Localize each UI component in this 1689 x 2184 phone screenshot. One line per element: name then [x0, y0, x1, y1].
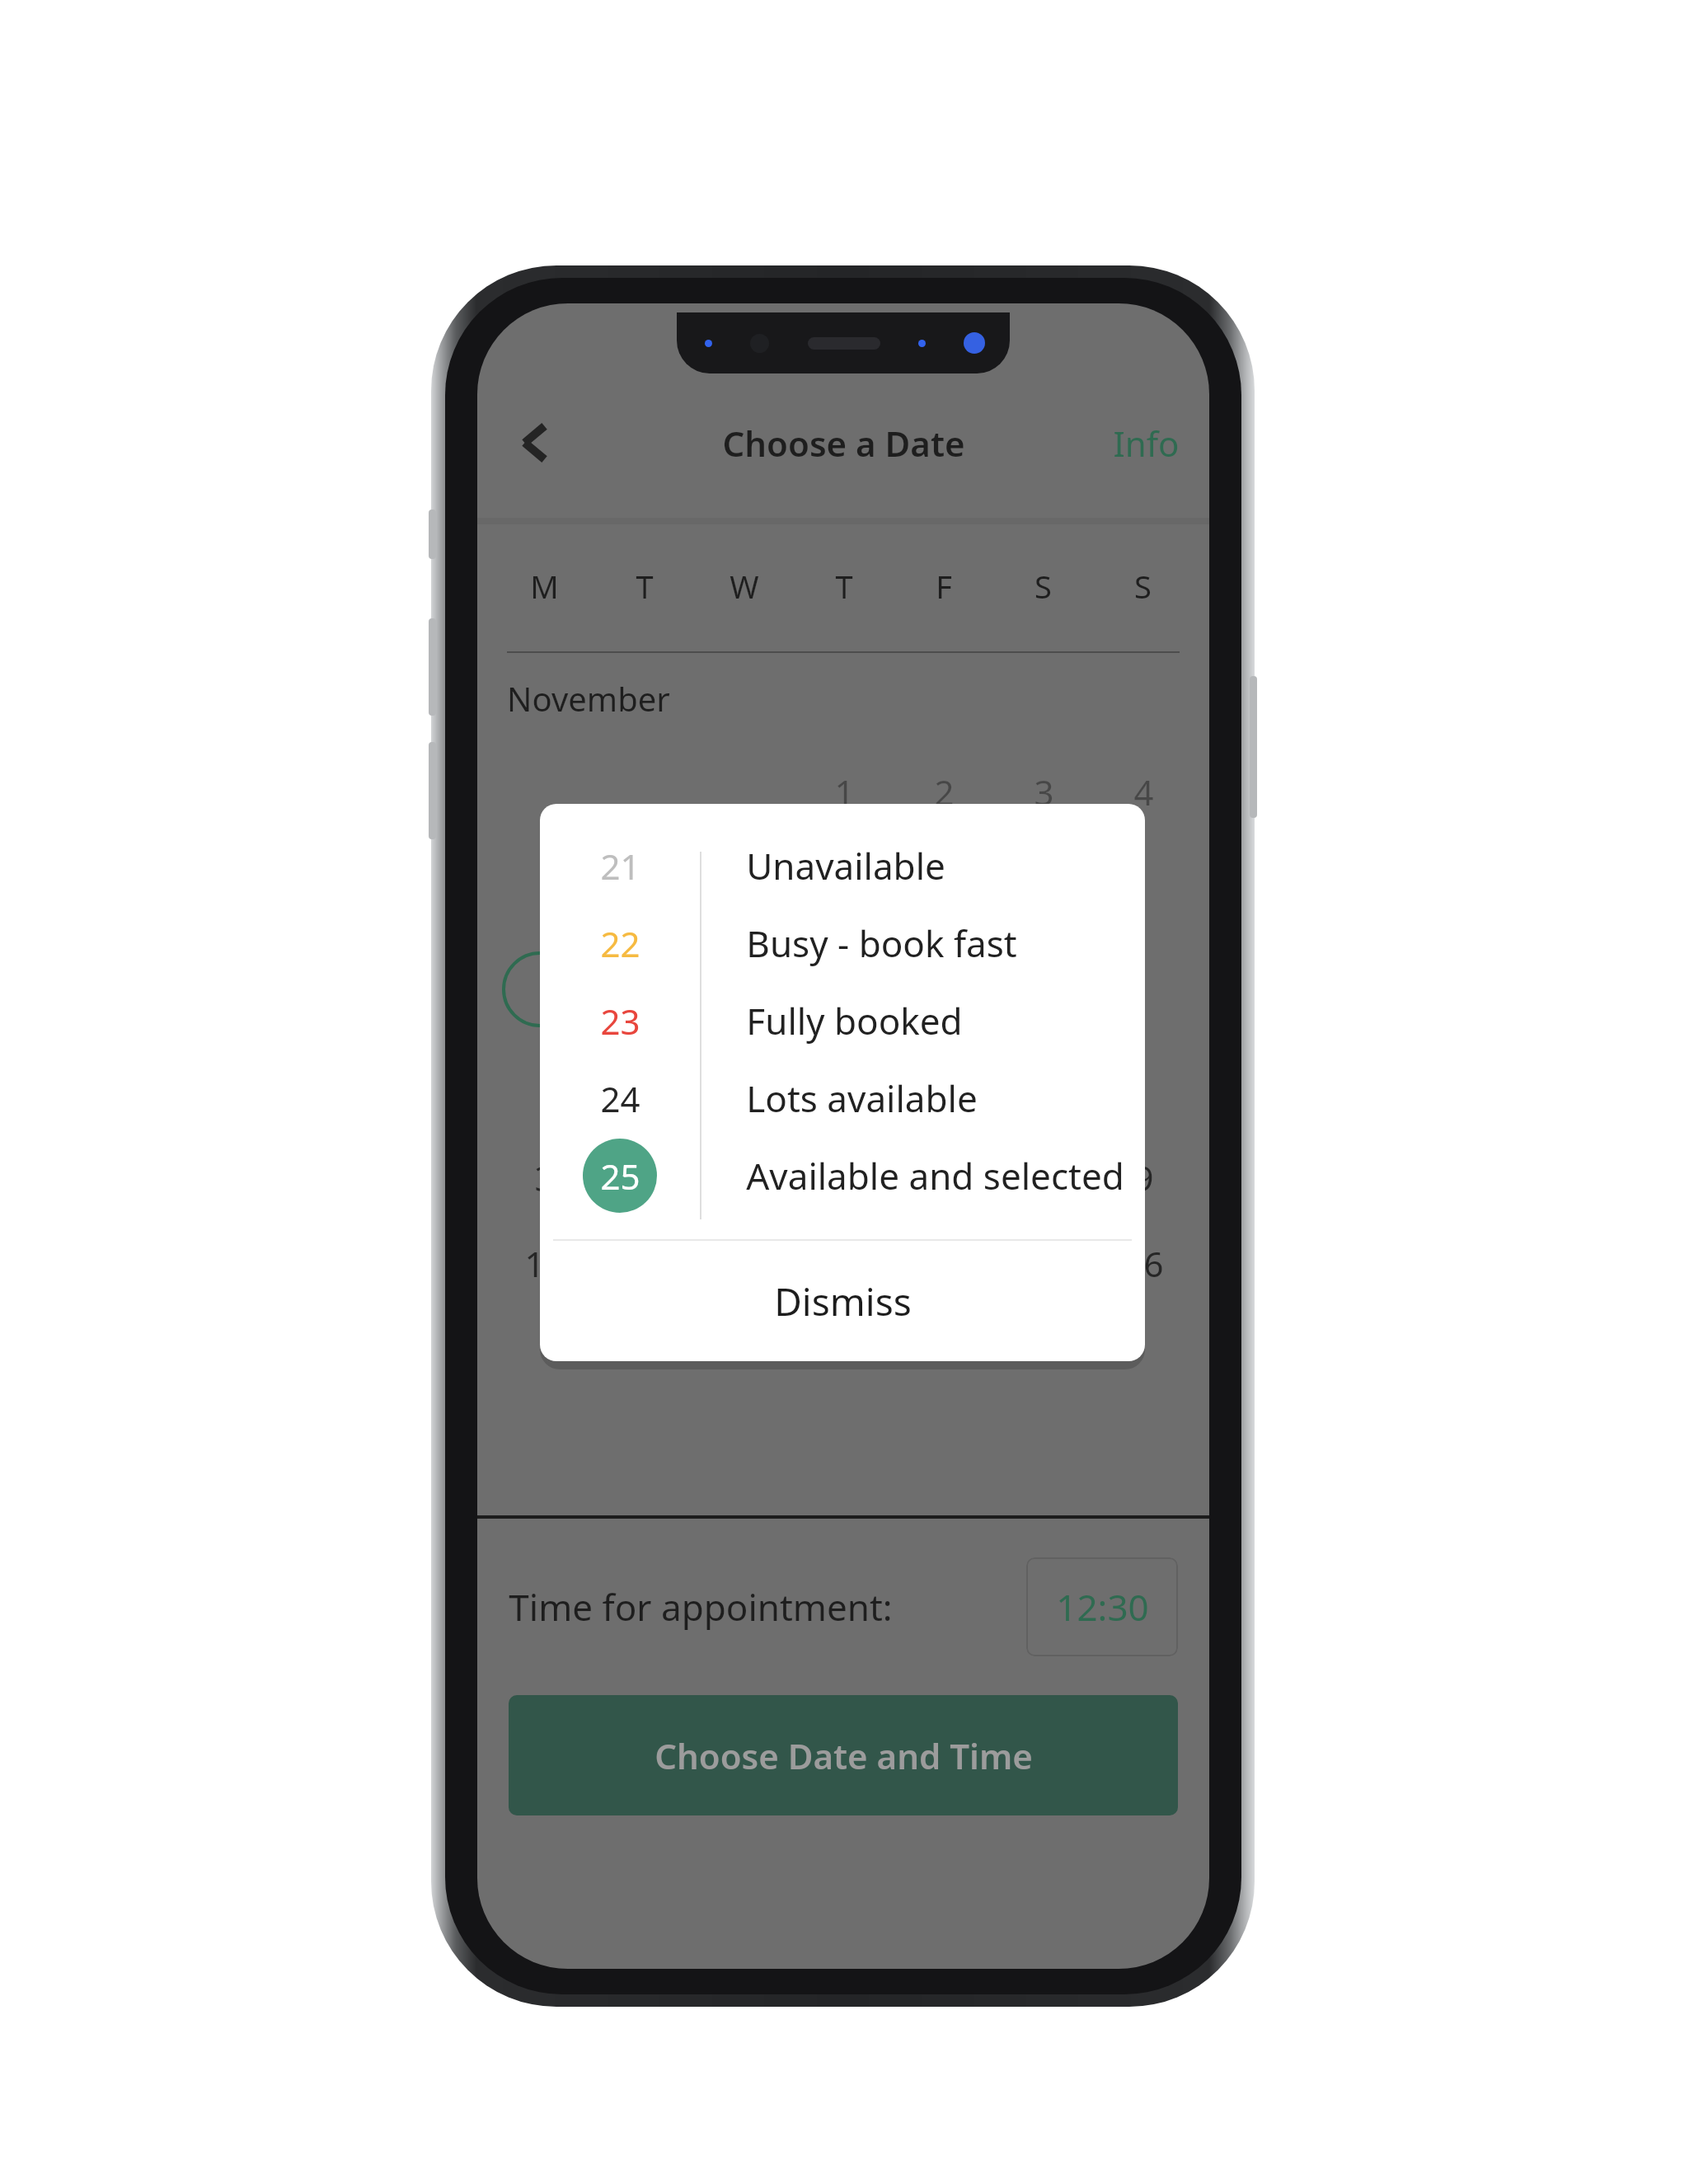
button[interactable]: 13 [806, 1225, 882, 1301]
staticText: 3 [1034, 768, 1054, 815]
button[interactable]: Back [494, 402, 576, 484]
button[interactable]: 5 [706, 1139, 782, 1215]
staticText: 1 [834, 768, 855, 815]
staticText: 25 [600, 1153, 640, 1200]
staticText: 14 [924, 1240, 964, 1287]
staticText: S [1134, 565, 1152, 608]
staticText: Choose Date and Time [654, 1732, 1033, 1779]
staticText: Choose a Date [722, 420, 965, 467]
button[interactable]: 24 [540, 1059, 1145, 1137]
button[interactable]: 14 [906, 1225, 982, 1301]
staticText: 13 [824, 1240, 865, 1287]
staticText: T [636, 565, 654, 608]
button[interactable]: 2 [906, 754, 982, 829]
staticText: 12:30 [1056, 1582, 1149, 1632]
button[interactable]: 21 [540, 827, 1145, 904]
staticText: Busy - book fast [746, 918, 1017, 968]
button[interactable]: 3 [506, 1139, 582, 1215]
staticText: 7 [934, 1154, 955, 1201]
button[interactable]: 12:30 [1026, 1557, 1178, 1656]
staticText: 23 [600, 998, 640, 1045]
button[interactable]: 1 [806, 754, 882, 829]
staticText: T [835, 565, 853, 608]
staticText: Info [1113, 420, 1180, 467]
button[interactable]: 8 [1006, 1139, 1081, 1215]
staticText: 12 [725, 1240, 765, 1287]
button[interactable]: 11 [607, 1225, 683, 1301]
button[interactable]: Choose Date and Time [509, 1695, 1178, 1815]
staticText: Unavailable [746, 841, 945, 890]
staticText: 16 [1124, 1240, 1164, 1287]
staticText: Time for appointment: [509, 1582, 893, 1632]
staticText: 6 [834, 1154, 855, 1201]
button[interactable]: 25 [540, 1137, 1145, 1214]
staticText: Lots available [746, 1073, 978, 1123]
staticText: F [936, 565, 952, 608]
button[interactable]: 4 [1105, 754, 1181, 829]
button[interactable]: 10 [506, 1225, 582, 1301]
staticText: M [530, 565, 559, 608]
staticText: Fully booked [746, 996, 963, 1045]
button[interactable]: 6 [806, 1139, 882, 1215]
button[interactable]: 7 [906, 1139, 982, 1215]
staticText: W [730, 565, 759, 608]
staticText: 15 [1024, 1240, 1064, 1287]
button[interactable]: 22 [540, 904, 1145, 982]
button[interactable]: 15 [1006, 1225, 1081, 1301]
staticText: S [1035, 565, 1052, 608]
button[interactable]: 9 [1105, 1139, 1181, 1215]
staticText: 4 [635, 1154, 655, 1201]
button[interactable]: Info [1101, 405, 1191, 481]
staticText: Dismiss [774, 1275, 912, 1327]
staticText: 10 [524, 1240, 565, 1287]
staticText: 8 [1034, 1154, 1054, 1201]
staticText: 2 [934, 768, 955, 815]
button[interactable]: Dismiss [540, 1241, 1145, 1361]
staticText: 11 [625, 1240, 665, 1287]
staticText: 4 [1133, 768, 1154, 815]
staticText: 21 [600, 843, 640, 890]
button[interactable]: 16 [1105, 1225, 1181, 1301]
button[interactable]: 4 [607, 1139, 683, 1215]
button[interactable]: 23 [540, 982, 1145, 1059]
staticText: 5 [734, 1154, 755, 1201]
staticText: 24 [600, 1075, 640, 1122]
staticText: Available and selected [746, 1151, 1124, 1200]
staticText: 22 [600, 920, 640, 967]
staticText: November [507, 676, 670, 721]
button[interactable]: 3 [1006, 754, 1081, 829]
staticText: 3 [534, 1154, 555, 1201]
button[interactable]: 12 [706, 1225, 782, 1301]
staticText: 9 [1133, 1154, 1154, 1201]
